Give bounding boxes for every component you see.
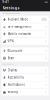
staticText: Share	[7, 56, 14, 60]
button[interactable]: Wi-Fi Management	[1, 23, 49, 30]
staticText: NETWORK & CONNECTIVITY	[3, 13, 21, 14]
staticText: Settings	[3, 5, 20, 10]
button[interactable]: VPN	[1, 38, 49, 45]
staticText: Accessibility	[7, 76, 23, 79]
staticText: ▮▮▮	[45, 1, 48, 3]
staticText: Security	[7, 90, 17, 94]
button[interactable]: Security	[1, 88, 49, 95]
staticText: Mobile networks	[7, 32, 30, 36]
staticText: 9:41	[2, 0, 9, 4]
staticText: VPN	[7, 39, 13, 43]
button[interactable]: Share	[1, 55, 49, 62]
staticText: PREFERENCES	[3, 63, 14, 65]
button[interactable]: Airplane Mode	[1, 16, 49, 23]
button[interactable]: Mobile networks	[1, 30, 49, 37]
staticText: Wi-Fi Management	[7, 25, 31, 28]
button[interactable]: Display	[1, 67, 49, 74]
staticText: Airplane Mode	[7, 18, 28, 21]
button[interactable]: Notifications	[1, 81, 49, 88]
staticText: Notifications	[7, 83, 24, 86]
button[interactable]: Bluetooth	[1, 47, 49, 54]
staticText: Display	[7, 68, 16, 72]
staticText: Bluetooth	[7, 49, 22, 53]
button[interactable]: Accessibility	[1, 74, 49, 81]
